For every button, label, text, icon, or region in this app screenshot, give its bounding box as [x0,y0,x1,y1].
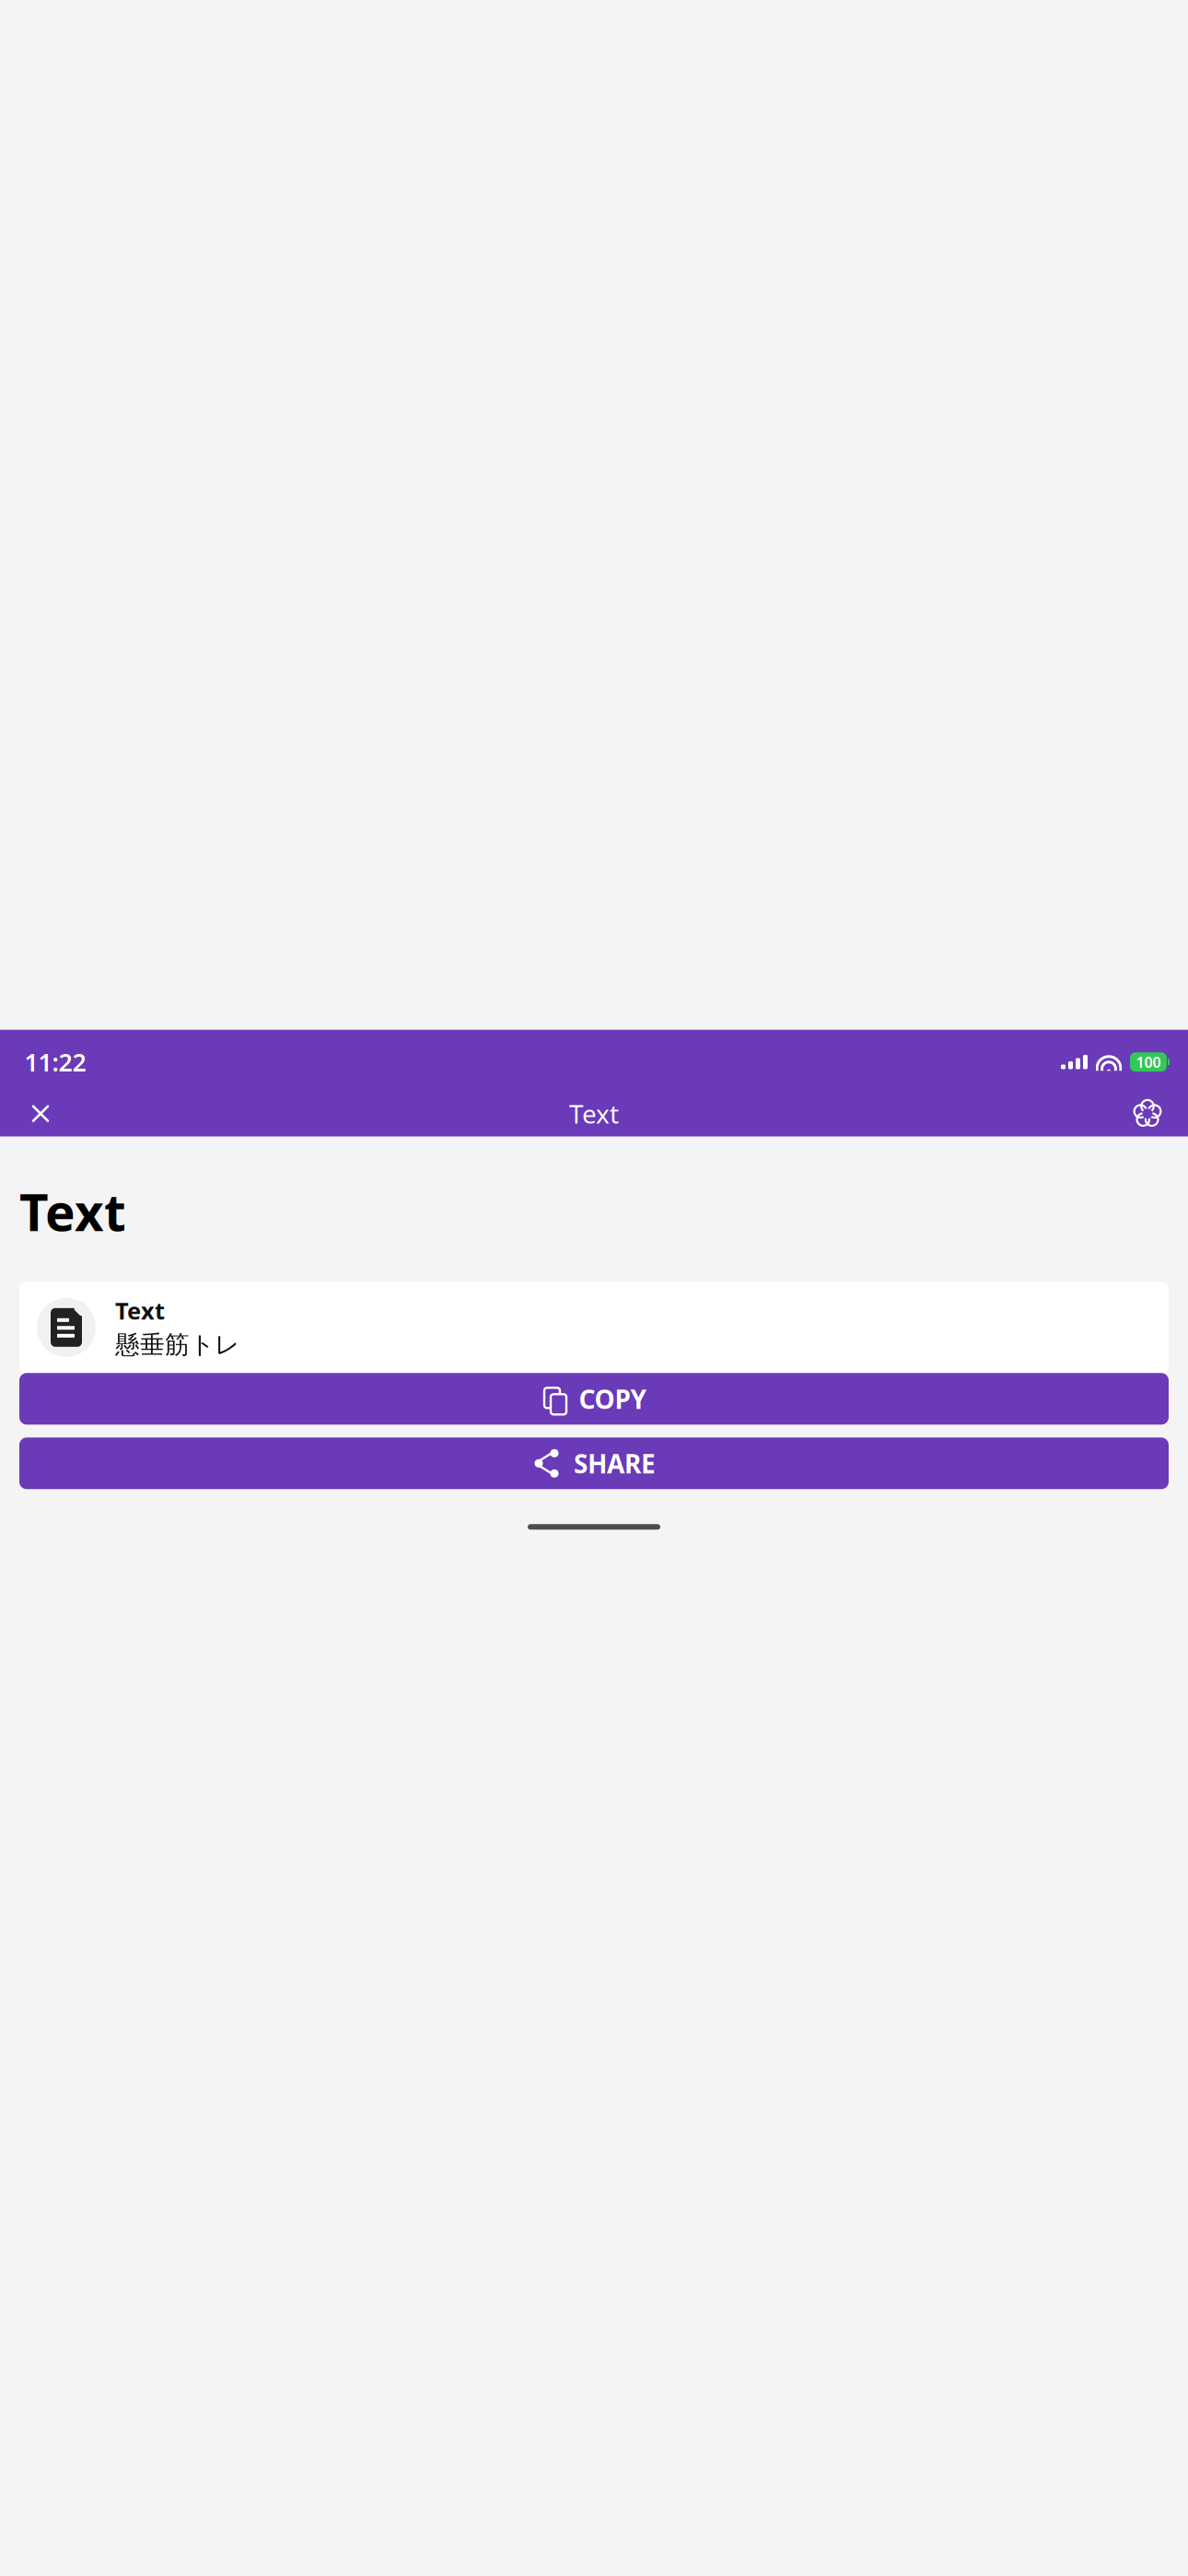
button[interactable]: Text [19,1282,1169,1373]
staticText: Text [569,1096,619,1131]
button[interactable]: Favorite [1123,1091,1172,1137]
button[interactable]: Share [19,1438,1169,1489]
button[interactable]: Close [16,1091,65,1137]
staticText: Text [115,1295,165,1326]
staticText: 11:22 [24,1046,86,1078]
staticText: Text [19,1178,126,1245]
staticText: 100 [1136,1052,1161,1072]
staticText: 懸垂筋トレ [115,1330,239,1360]
staticText: SHARE [574,1446,656,1480]
button[interactable]: Copy [19,1373,1169,1425]
staticText: COPY [579,1382,647,1416]
